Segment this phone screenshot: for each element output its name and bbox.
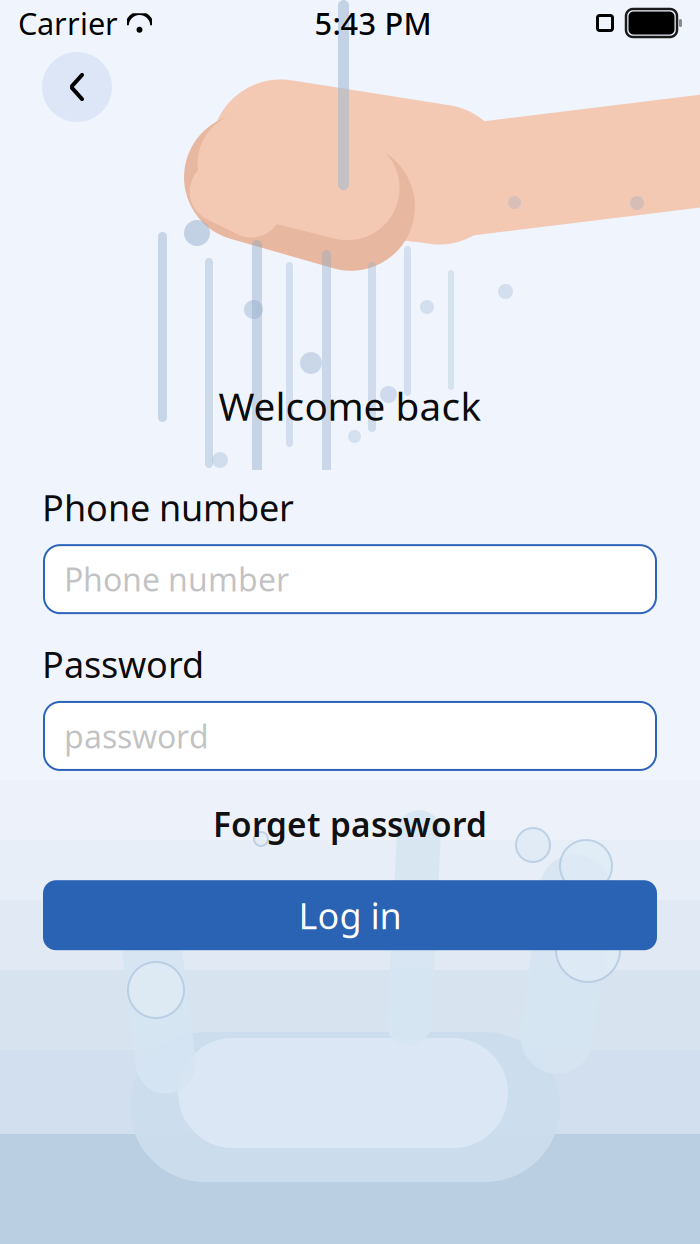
- staticText: Forget password: [213, 802, 487, 846]
- staticText: Phone number: [64, 558, 289, 600]
- staticText: Password: [42, 640, 204, 688]
- button[interactable]: Phone number: [44, 545, 656, 613]
- button[interactable]: Back: [42, 52, 112, 122]
- button[interactable]: Log in: [43, 880, 657, 950]
- staticText: Welcome back: [218, 380, 481, 431]
- staticText: Phone number: [42, 483, 294, 531]
- staticText: Carrier: [18, 3, 118, 43]
- button[interactable]: Forget password: [0, 796, 700, 852]
- button[interactable]: password: [44, 702, 656, 770]
- staticText: Log in: [298, 891, 401, 939]
- staticText: password: [64, 715, 209, 757]
- staticText: 5:43 PM: [314, 3, 431, 43]
